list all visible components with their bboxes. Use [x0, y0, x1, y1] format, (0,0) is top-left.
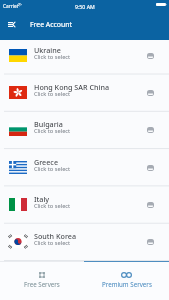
- button[interactable]: Open navigation menu: [3, 14, 20, 35]
- button[interactable]: Free Servers: [0, 261, 84, 300]
- button[interactable]: Premium Servers: [84, 261, 169, 300]
- staticText: Italy: [34, 194, 50, 204]
- staticText: 9:50 AM: [75, 3, 95, 10]
- staticText: Click to select: [34, 165, 71, 173]
- staticText: Premium Servers: [102, 280, 152, 288]
- staticText: Free Account: [30, 20, 73, 29]
- button[interactable]: Ukraine: [0, 37, 169, 74]
- button[interactable]: Bulgaria: [0, 111, 169, 148]
- button[interactable]: Italy: [0, 186, 169, 223]
- staticText: Click to select: [34, 127, 71, 135]
- staticText: Click to select: [34, 239, 71, 247]
- staticText: Hong Kong SAR China: [34, 82, 110, 92]
- staticText: Bulgaria: [34, 119, 63, 129]
- button[interactable]: Hong Kong SAR China: [0, 74, 169, 111]
- staticText: Click to select: [34, 90, 71, 98]
- staticText: Click to select: [34, 53, 71, 61]
- staticText: Ukraine: [34, 45, 61, 55]
- staticText: Free Servers: [24, 280, 60, 288]
- button[interactable]: Greece: [0, 149, 169, 186]
- staticText: Click to select: [34, 202, 71, 210]
- staticText: South Korea: [34, 231, 77, 241]
- button[interactable]: South Korea: [0, 223, 169, 260]
- staticText: Carrier: [3, 3, 19, 10]
- staticText: Greece: [34, 157, 59, 167]
